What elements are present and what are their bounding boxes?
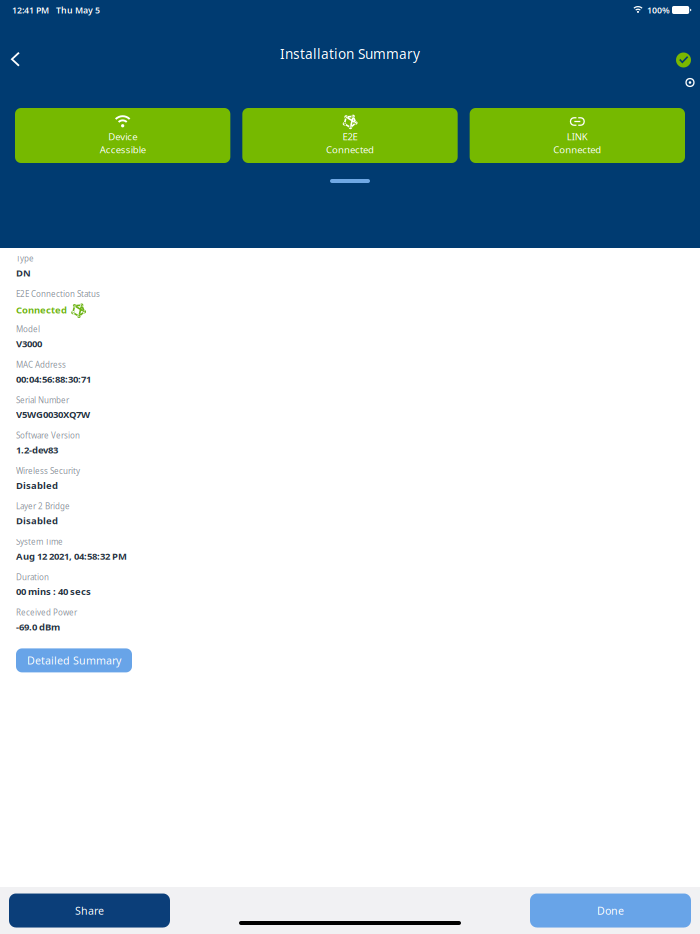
staticText: Software Version	[16, 430, 80, 441]
staticText: 00 mins : 40 secs	[16, 585, 91, 598]
staticText: MAC Address	[16, 359, 66, 370]
staticText: Duration	[16, 572, 49, 582]
staticText: Disabled	[16, 479, 58, 492]
staticText: E2E Connection Status	[16, 288, 100, 299]
staticText: Share	[75, 903, 104, 918]
staticText: E2E	[342, 130, 357, 143]
staticText: -69.0 dBm	[16, 620, 60, 633]
staticText: Serial Number	[16, 395, 69, 405]
staticText: Received Power	[16, 607, 77, 618]
staticText: Detailed Summary	[27, 653, 121, 668]
staticText: 100%	[647, 4, 670, 16]
staticText: V5WG0030XQ7W	[16, 408, 90, 421]
button[interactable]: Device	[15, 108, 230, 163]
staticText: Done	[597, 903, 624, 918]
button[interactable]: Back	[0, 44, 30, 74]
staticText: DN	[16, 266, 31, 279]
staticText: Layer 2 Bridge	[16, 501, 70, 512]
button[interactable]: Share	[9, 893, 170, 927]
staticText: Thu May 5	[56, 4, 100, 16]
staticText: System Time	[16, 536, 63, 547]
button[interactable]: Done	[530, 893, 691, 927]
staticText: Wireless Security	[16, 465, 80, 476]
staticText: 1.2-dev83	[16, 443, 58, 456]
staticText: 12:41 PM	[12, 4, 49, 16]
button[interactable]: LINK	[470, 108, 685, 163]
staticText: LINK	[567, 130, 588, 143]
staticText: Aug 12 2021, 04:58:32 PM	[16, 550, 127, 562]
staticText: Connected	[326, 143, 374, 156]
staticText: 00:04:56:88:30:71	[16, 373, 91, 385]
button[interactable]: E2E	[242, 108, 458, 163]
staticText: V3000	[16, 337, 42, 350]
staticText: Model	[16, 324, 40, 335]
button[interactable]: More info	[685, 77, 695, 87]
staticText: Type	[16, 253, 34, 264]
staticText: Connected	[553, 143, 601, 156]
button[interactable]: Detailed Summary	[16, 648, 132, 672]
staticText: Connected	[16, 303, 67, 316]
staticText: Installation Summary	[280, 44, 420, 63]
button[interactable]: Installation succeeded	[676, 52, 691, 67]
staticText: Accessible	[100, 143, 146, 156]
staticText: Disabled	[16, 514, 58, 527]
staticText: Device	[108, 130, 137, 143]
